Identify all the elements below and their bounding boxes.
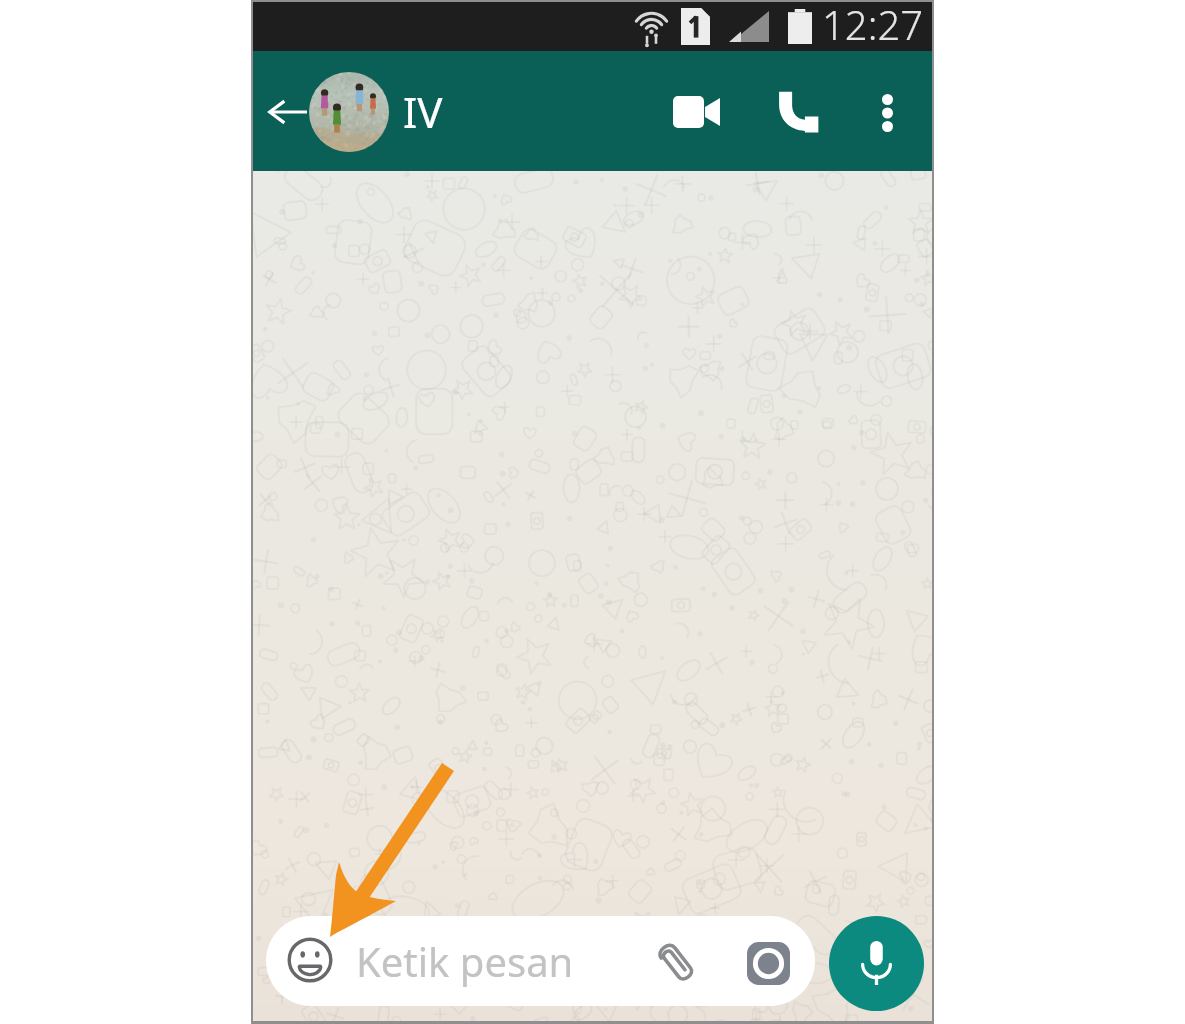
button[interactable]: Video call — [663, 79, 729, 145]
button[interactable]: Attach — [647, 935, 703, 991]
button[interactable]: Contact photo — [309, 72, 389, 152]
button[interactable]: Camera — [740, 935, 796, 991]
staticText: Ketik pesan — [356, 934, 574, 988]
button[interactable]: IV — [403, 51, 473, 171]
button[interactable]: More options — [854, 80, 920, 146]
button[interactable]: Emoji — [282, 932, 338, 988]
button[interactable]: Ketik pesan — [266, 916, 815, 1006]
button[interactable]: Record voice message — [829, 916, 924, 1011]
button[interactable]: Back — [258, 81, 316, 143]
staticText: 12:27 — [822, 2, 924, 46]
staticText: IV — [403, 83, 443, 140]
button[interactable]: Voice call — [765, 79, 831, 145]
